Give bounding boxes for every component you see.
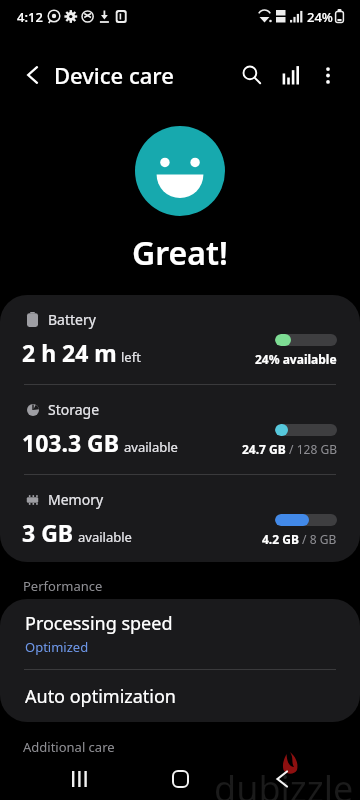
button[interactable]: Storage xyxy=(0,385,360,474)
staticText: 24% xyxy=(307,8,333,26)
button[interactable]: More options xyxy=(310,60,346,90)
staticText: left xyxy=(121,348,141,366)
button[interactable]: Memory xyxy=(0,475,360,562)
button[interactable]: Auto optimization xyxy=(0,670,360,722)
staticText: Optimized xyxy=(25,638,89,656)
button[interactable]: Processing speed xyxy=(0,599,360,669)
button[interactable]: Battery xyxy=(0,295,360,384)
button[interactable]: Recent apps xyxy=(28,759,130,799)
staticText: 2 h 24 m xyxy=(22,337,117,368)
staticText: 24.7 GB xyxy=(242,441,286,457)
staticText: available xyxy=(78,528,132,546)
button[interactable]: Usage chart xyxy=(272,60,308,90)
staticText: Additional care xyxy=(23,738,115,756)
staticText: 103.3 GB xyxy=(22,427,120,458)
staticText: 24% available xyxy=(255,351,337,367)
button[interactable]: Back xyxy=(231,759,332,799)
staticText: Memory xyxy=(48,490,104,509)
staticText: 4:12 xyxy=(17,8,43,26)
staticText: Storage xyxy=(48,400,100,419)
staticText: Great! xyxy=(132,231,228,275)
button[interactable]: Navigate up xyxy=(15,60,49,90)
staticText: 4.2 GB xyxy=(262,531,299,547)
staticText: Device care xyxy=(54,60,174,90)
staticText: / 128 GB xyxy=(286,441,337,457)
staticText: 3 GB xyxy=(22,517,74,548)
staticText: available xyxy=(124,438,178,456)
button[interactable]: Home xyxy=(130,759,231,799)
staticText: Battery xyxy=(48,310,96,329)
staticText: Processing speed xyxy=(25,611,173,636)
staticText: / 8 GB xyxy=(299,531,337,547)
staticText: Auto optimization xyxy=(25,684,176,709)
staticText: dubizzle xyxy=(214,764,354,800)
staticText: Performance xyxy=(23,577,103,595)
button[interactable]: Search xyxy=(234,60,270,90)
